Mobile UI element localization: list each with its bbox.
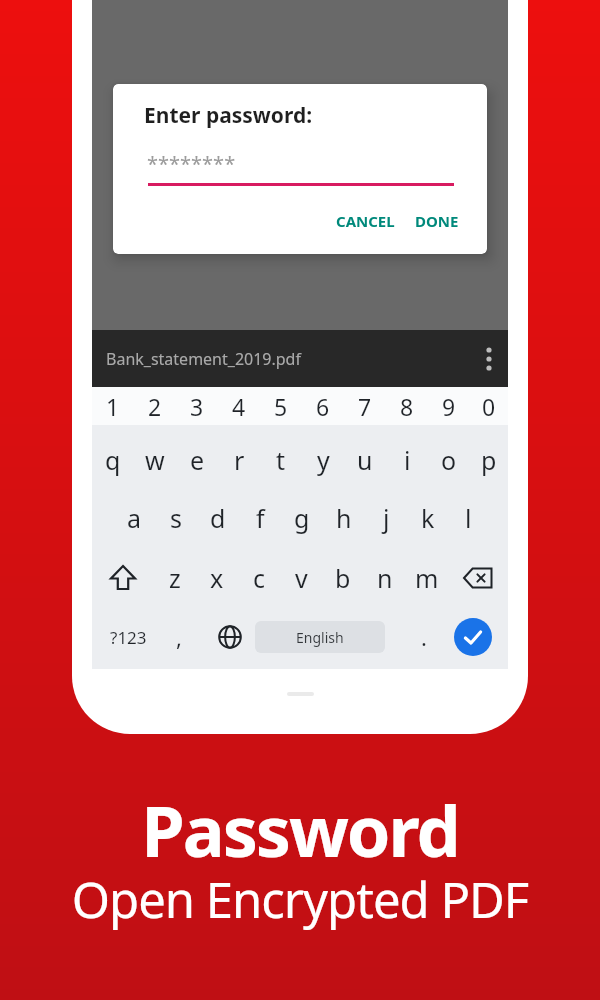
button[interactable]: 0 bbox=[470, 387, 508, 425]
button[interactable]: 7 bbox=[344, 387, 386, 425]
button[interactable]: 5 bbox=[260, 387, 302, 425]
staticText: ******** bbox=[147, 150, 236, 177]
button[interactable]: j bbox=[365, 496, 407, 540]
button[interactable]: b bbox=[322, 556, 364, 600]
staticText: q bbox=[105, 443, 121, 477]
staticText: l bbox=[465, 501, 472, 535]
staticText: u bbox=[357, 443, 373, 477]
staticText: 0 bbox=[482, 391, 496, 422]
staticText: ?123 bbox=[110, 626, 147, 649]
button[interactable]: . bbox=[404, 615, 444, 659]
staticText: Enter password: bbox=[144, 101, 313, 130]
button[interactable] bbox=[92, 556, 154, 600]
button[interactable] bbox=[454, 618, 492, 656]
button[interactable]: y bbox=[302, 438, 344, 482]
staticText: English bbox=[296, 628, 344, 647]
staticText: 7 bbox=[358, 391, 372, 422]
button[interactable]: z bbox=[154, 556, 196, 600]
staticText: n bbox=[377, 561, 393, 595]
staticText: 1 bbox=[106, 391, 120, 422]
button[interactable]: c bbox=[238, 556, 280, 600]
staticText: x bbox=[210, 561, 224, 595]
staticText: 6 bbox=[316, 391, 330, 422]
button[interactable]: o bbox=[428, 438, 470, 482]
button[interactable]: m bbox=[406, 556, 448, 600]
staticText: b bbox=[335, 561, 351, 595]
staticText: 9 bbox=[442, 391, 456, 422]
button[interactable] bbox=[448, 556, 508, 600]
button[interactable]: x bbox=[196, 556, 238, 600]
button[interactable]: , bbox=[160, 615, 198, 659]
button[interactable]: a bbox=[113, 496, 155, 540]
staticText: m bbox=[415, 561, 439, 595]
button[interactable]: CANCEL bbox=[325, 204, 405, 238]
button[interactable]: English bbox=[255, 621, 385, 653]
button[interactable]: h bbox=[323, 496, 365, 540]
staticText: w bbox=[145, 443, 165, 477]
button[interactable]: 9 bbox=[428, 387, 470, 425]
button[interactable]: n bbox=[364, 556, 406, 600]
staticText: z bbox=[169, 561, 181, 595]
staticText: i bbox=[404, 443, 411, 477]
staticText: t bbox=[276, 443, 286, 477]
button[interactable]: q bbox=[92, 438, 134, 482]
staticText: 5 bbox=[274, 391, 288, 422]
staticText: CANCEL bbox=[336, 211, 395, 231]
button[interactable]: 3 bbox=[176, 387, 218, 425]
staticText: Password bbox=[0, 782, 600, 877]
staticText: 8 bbox=[400, 391, 414, 422]
staticText: Bank_statement_2019.pdf bbox=[106, 348, 301, 370]
button[interactable]: d bbox=[197, 496, 239, 540]
staticText: j bbox=[383, 501, 390, 535]
staticText: 3 bbox=[190, 391, 204, 422]
button[interactable] bbox=[210, 615, 250, 659]
button[interactable]: 6 bbox=[302, 387, 344, 425]
staticText: p bbox=[481, 443, 497, 477]
button[interactable]: s bbox=[155, 496, 197, 540]
staticText: DONE bbox=[415, 211, 459, 231]
button[interactable]: u bbox=[344, 438, 386, 482]
staticText: d bbox=[210, 501, 226, 535]
staticText: c bbox=[253, 561, 266, 595]
button[interactable]: l bbox=[449, 496, 488, 540]
button[interactable]: r bbox=[218, 438, 260, 482]
button[interactable]: 4 bbox=[218, 387, 260, 425]
staticText: g bbox=[294, 501, 310, 535]
button[interactable]: k bbox=[407, 496, 449, 540]
button[interactable]: 1 bbox=[92, 387, 134, 425]
button[interactable]: e bbox=[176, 438, 218, 482]
staticText: Open Encrypted PDF bbox=[0, 866, 600, 933]
staticText: . bbox=[421, 622, 427, 652]
staticText: f bbox=[256, 501, 265, 535]
button[interactable]: ?123 bbox=[100, 615, 156, 659]
button[interactable]: t bbox=[260, 438, 302, 482]
button[interactable]: f bbox=[239, 496, 281, 540]
button[interactable]: p bbox=[470, 438, 508, 482]
staticText: a bbox=[127, 501, 142, 535]
staticText: e bbox=[190, 443, 205, 477]
button[interactable]: 8 bbox=[386, 387, 428, 425]
staticText: k bbox=[421, 501, 435, 535]
staticText: o bbox=[441, 443, 457, 477]
button[interactable]: 2 bbox=[134, 387, 176, 425]
button[interactable]: g bbox=[281, 496, 323, 540]
staticText: 4 bbox=[232, 391, 246, 422]
button[interactable]: w bbox=[134, 438, 176, 482]
staticText: v bbox=[295, 561, 308, 595]
button[interactable]: DONE bbox=[405, 204, 469, 238]
button[interactable]: v bbox=[280, 556, 322, 600]
staticText: r bbox=[234, 443, 245, 477]
button[interactable]: i bbox=[386, 438, 428, 482]
staticText: , bbox=[176, 622, 182, 652]
staticText: s bbox=[170, 501, 182, 535]
staticText: y bbox=[317, 443, 330, 477]
staticText: h bbox=[336, 501, 352, 535]
staticText: 2 bbox=[148, 391, 162, 422]
